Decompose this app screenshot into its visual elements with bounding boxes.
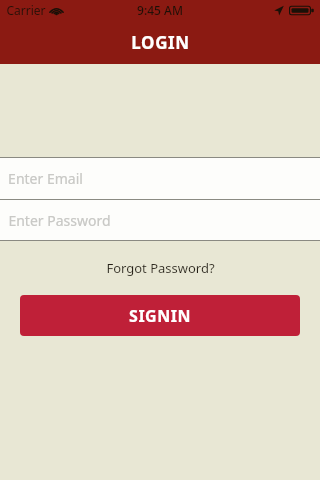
other: Location services active — [273, 5, 284, 16]
staticText: Forgot Password? — [106, 259, 215, 277]
other: Wi-Fi signal — [50, 5, 63, 15]
button[interactable]: Enter Email — [0, 158, 320, 199]
staticText: SIGNIN — [129, 305, 191, 327]
button[interactable]: SIGNIN — [20, 295, 300, 336]
staticText: 9:45 AM — [137, 2, 183, 18]
other: Battery full — [289, 5, 314, 16]
button[interactable]: Forgot Password? — [0, 259, 320, 277]
staticText: Enter Password — [8, 211, 111, 230]
staticText: Enter Email — [8, 169, 83, 188]
button[interactable]: Enter Password — [0, 200, 320, 240]
staticText: Carrier — [6, 2, 46, 18]
staticText: LOGIN — [131, 31, 190, 54]
